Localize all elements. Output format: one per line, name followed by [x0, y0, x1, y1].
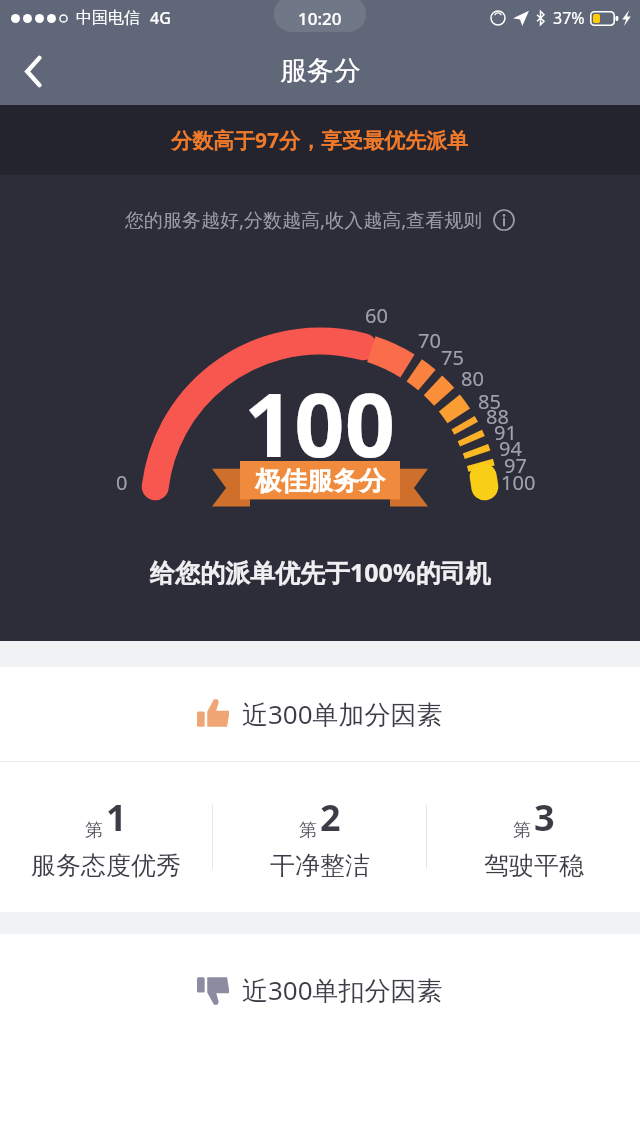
staticText: 2 — [320, 793, 341, 842]
staticText: 85 — [478, 388, 501, 415]
button[interactable]: 分数高于97分，享受最优先派单 — [0, 105, 640, 175]
staticText: 中国电信 — [76, 8, 140, 28]
staticText: 您的服务越好,分数越高,收入越高,查看规则 — [125, 207, 483, 233]
staticText: 100 — [501, 469, 536, 496]
staticText: 60 — [365, 302, 388, 329]
button[interactable]: 近300单扣分因素 — [0, 934, 640, 1046]
staticText: 极佳服务分 — [255, 465, 385, 498]
staticText: 服务态度优秀 — [31, 850, 181, 881]
staticText: 97 — [504, 452, 527, 479]
button[interactable]: 第 — [213, 762, 426, 912]
staticText: 70 — [418, 327, 441, 354]
staticText: 近300单扣分因素 — [242, 972, 443, 1008]
button[interactable]: 您的服务越好,分数越高,收入越高,查看规则 — [0, 207, 640, 233]
button[interactable]: Back — [0, 38, 66, 104]
button[interactable]: 第 — [0, 762, 212, 912]
staticText: 服务分 — [280, 54, 361, 88]
staticText: 干净整洁 — [270, 850, 370, 881]
staticText: 94 — [499, 435, 522, 462]
staticText: 100 — [244, 363, 396, 483]
button[interactable]: 近300单加分因素 — [0, 667, 640, 761]
staticText: 88 — [486, 403, 509, 430]
staticText: 0 — [116, 469, 128, 496]
staticText: 3 — [534, 793, 555, 842]
staticText: 近300单加分因素 — [242, 696, 443, 732]
staticText: 80 — [461, 365, 484, 392]
staticText: 分数高于97分，享受最优先派单 — [171, 126, 469, 155]
staticText: 第 — [299, 819, 317, 842]
staticText: 驾驶平稳 — [484, 850, 584, 881]
staticText: 91 — [494, 419, 517, 446]
staticText: 75 — [441, 344, 464, 371]
button[interactable]: 第 — [427, 762, 640, 912]
staticText: 给您的派单优先于100%的司机 — [150, 555, 491, 589]
staticText: 37% — [553, 7, 585, 29]
staticText: 第 — [513, 819, 531, 842]
staticText: 第 — [85, 819, 103, 842]
staticText: 1 — [106, 793, 127, 842]
staticText: 10:20 — [298, 7, 342, 30]
staticText: 4G — [150, 7, 171, 29]
